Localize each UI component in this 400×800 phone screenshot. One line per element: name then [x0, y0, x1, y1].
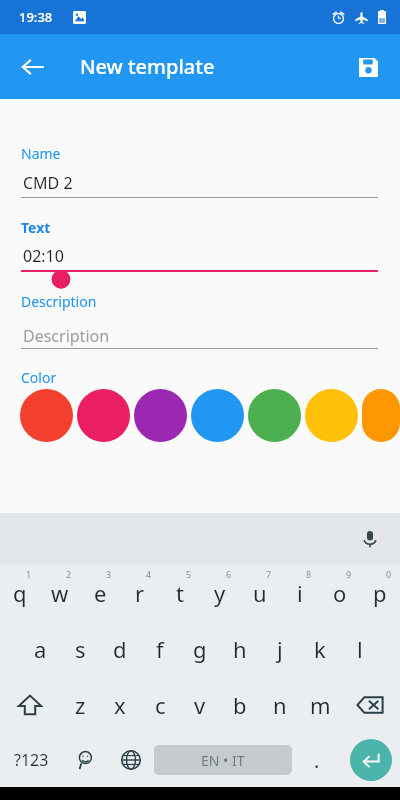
- staticText: 8: [306, 568, 312, 580]
- button[interactable]: Text: [21, 218, 51, 237]
- button[interactable]: 5: [160, 565, 200, 621]
- button[interactable]: Color swatch: [248, 389, 301, 442]
- button[interactable]: n: [260, 677, 300, 733]
- button[interactable]: h: [220, 621, 260, 677]
- button[interactable]: Color swatch: [77, 389, 130, 442]
- staticText: g: [193, 634, 207, 664]
- staticText: 3: [106, 568, 112, 580]
- button[interactable]: Color swatch: [191, 389, 244, 442]
- button[interactable]: Shift: [0, 677, 60, 733]
- button[interactable]: s: [60, 621, 100, 677]
- staticText: 9: [346, 568, 352, 580]
- staticText: l: [357, 634, 363, 664]
- staticText: .: [314, 747, 320, 774]
- button[interactable]: 3: [80, 565, 120, 621]
- staticText: h: [233, 634, 247, 664]
- button[interactable]: Voice input: [352, 521, 388, 557]
- staticText: s: [75, 634, 86, 664]
- button[interactable]: Color: [21, 368, 57, 387]
- staticText: 0: [386, 568, 392, 580]
- button[interactable]: Color swatch: [20, 389, 73, 442]
- staticText: 6: [226, 568, 232, 580]
- staticText: k: [314, 634, 326, 664]
- button[interactable]: b: [220, 677, 260, 733]
- button[interactable]: a: [20, 621, 60, 677]
- button[interactable]: 2: [40, 565, 80, 621]
- button[interactable]: Color swatch: [134, 389, 187, 442]
- staticText: v: [194, 690, 206, 720]
- staticText: t: [176, 578, 184, 608]
- button[interactable]: 9: [320, 565, 360, 621]
- button[interactable]: k: [300, 621, 340, 677]
- staticText: u: [253, 578, 267, 608]
- staticText: w: [51, 578, 69, 608]
- button[interactable]: z: [60, 677, 100, 733]
- button[interactable]: EN • IT: [154, 745, 292, 775]
- staticText: 5: [186, 568, 192, 580]
- staticText: i: [297, 578, 303, 608]
- button[interactable]: Color swatch: [305, 389, 358, 442]
- staticText: a: [34, 634, 47, 664]
- button[interactable]: d: [100, 621, 140, 677]
- button[interactable]: g: [180, 621, 220, 677]
- staticText: r: [135, 578, 145, 608]
- staticText: o: [333, 578, 347, 608]
- button[interactable]: 8: [280, 565, 320, 621]
- button[interactable]: 4: [120, 565, 160, 621]
- staticText: Description: [23, 325, 110, 347]
- staticText: CMD 2: [23, 172, 73, 194]
- staticText: 19:38: [19, 8, 53, 26]
- staticText: n: [273, 690, 287, 720]
- staticText: m: [310, 690, 331, 720]
- staticText: 02:10: [23, 245, 64, 267]
- button[interactable]: m: [300, 677, 340, 733]
- button[interactable]: c: [140, 677, 180, 733]
- button[interactable]: j: [260, 621, 300, 677]
- button[interactable]: Name: [21, 144, 61, 163]
- button[interactable]: Color swatch: [362, 389, 400, 442]
- button[interactable]: Backspace: [340, 677, 400, 733]
- staticText: New template: [80, 53, 215, 80]
- staticText: ?123: [14, 749, 49, 771]
- button[interactable]: 7: [240, 565, 280, 621]
- staticText: x: [114, 690, 126, 720]
- staticText: e: [94, 578, 107, 608]
- button[interactable]: 0: [360, 565, 400, 621]
- staticText: b: [233, 690, 247, 720]
- staticText: d: [113, 634, 127, 664]
- button[interactable]: Enter: [350, 739, 392, 781]
- button[interactable]: l: [340, 621, 380, 677]
- button[interactable]: ?123: [0, 733, 62, 787]
- staticText: 4: [146, 568, 152, 580]
- button[interactable]: 6: [200, 565, 240, 621]
- staticText: z: [75, 690, 86, 720]
- staticText: EN • IT: [201, 751, 245, 770]
- button[interactable]: Change language: [108, 733, 154, 787]
- button[interactable]: Description: [21, 292, 97, 311]
- staticText: q: [13, 578, 27, 608]
- staticText: 7: [266, 568, 272, 580]
- staticText: p: [373, 578, 387, 608]
- staticText: y: [214, 578, 226, 608]
- staticText: f: [156, 634, 164, 664]
- button[interactable]: Emoji: [62, 733, 108, 787]
- staticText: 2: [66, 568, 72, 580]
- button[interactable]: Back: [8, 43, 56, 91]
- button[interactable]: .: [292, 733, 342, 787]
- staticText: c: [155, 690, 166, 720]
- staticText: j: [277, 634, 283, 664]
- staticText: 1: [26, 568, 32, 580]
- button[interactable]: x: [100, 677, 140, 733]
- button[interactable]: 1: [0, 565, 40, 621]
- button[interactable]: v: [180, 677, 220, 733]
- button[interactable]: f: [140, 621, 180, 677]
- button[interactable]: Save: [344, 43, 392, 91]
